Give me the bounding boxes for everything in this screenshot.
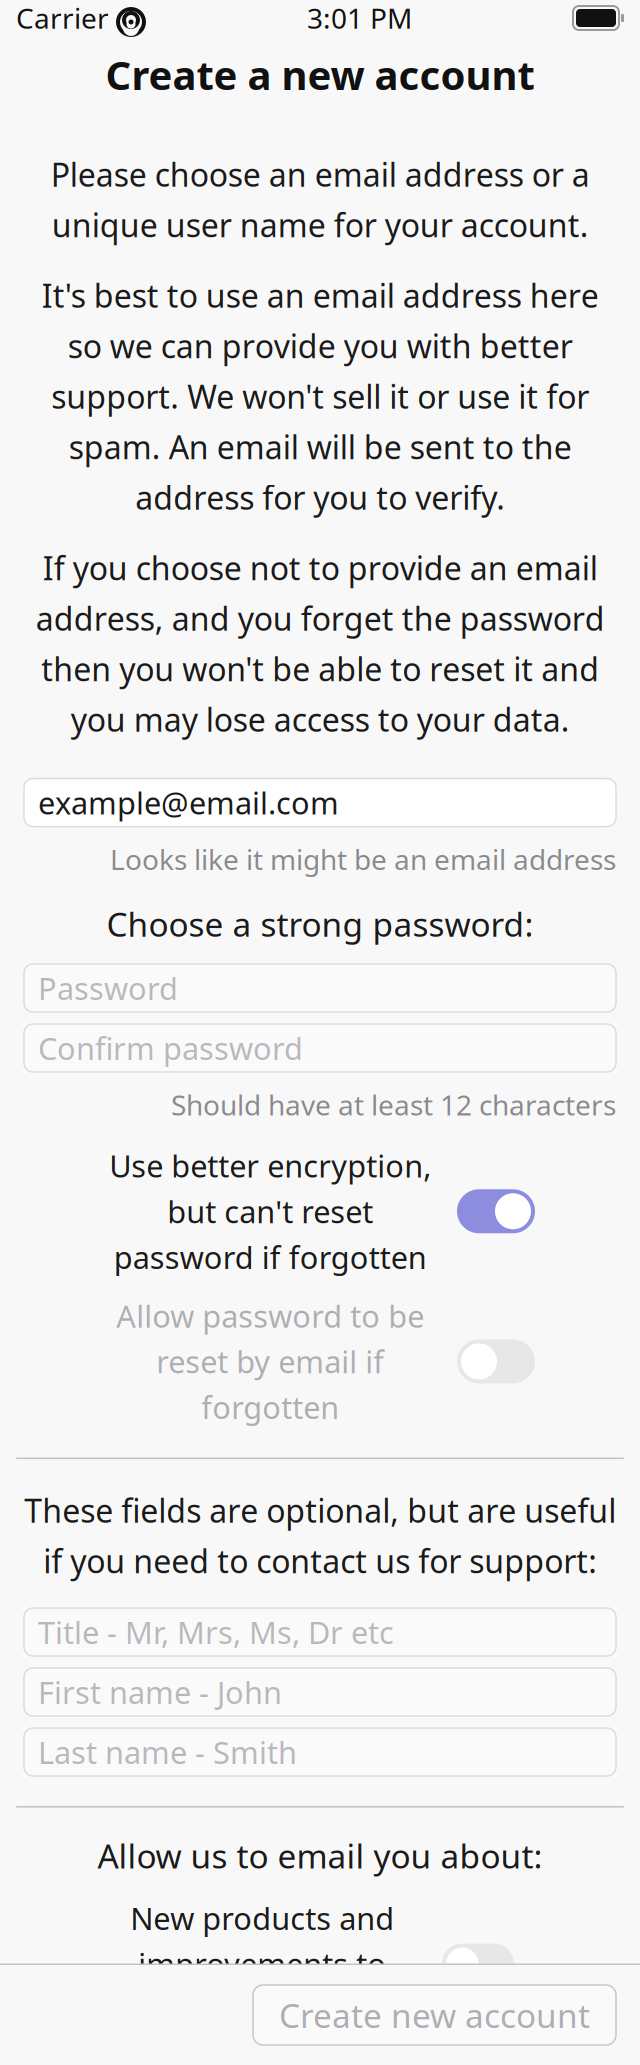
staticText: Create a new account	[105, 48, 534, 101]
staticText: 3:01 PM	[307, 0, 412, 37]
staticText: Please choose an email address or a uniq…	[50, 153, 589, 246]
button[interactable]: Use better encryption, but can't reset p…	[0, 1145, 640, 1277]
staticText: Choose a strong password:	[106, 902, 533, 946]
staticText: Allow password to be reset by email if f…	[116, 1295, 424, 1428]
staticText: example@email.com	[38, 782, 339, 823]
button[interactable]: First name - John	[24, 1668, 616, 1716]
staticText: First name - John	[38, 1672, 282, 1712]
staticText: If you choose not to provide an email ad…	[35, 547, 604, 741]
button[interactable]: Title - Mr, Mrs, Ms, Dr etc	[24, 1608, 616, 1656]
staticText: Should have at least 12 characters	[171, 1086, 616, 1123]
staticText: These fields are optional, but are usefu…	[24, 1489, 616, 1582]
button[interactable]: New products and improvements to existin…	[0, 1898, 616, 2030]
button[interactable]: Allow password to be reset by email if f…	[0, 1295, 640, 1428]
staticText: Last name - Smith	[38, 1732, 297, 1772]
staticText: Allow us to email you about:	[97, 1833, 542, 1878]
staticText: Title - Mr, Mrs, Ms, Dr etc	[38, 1612, 394, 1652]
staticText: New products and improvements to existin…	[130, 1898, 394, 2030]
button[interactable]: Create new account	[253, 1985, 616, 2045]
staticText: Looks like it might be an email address	[110, 841, 616, 878]
button[interactable]: Last name - Smith	[24, 1728, 616, 1776]
staticText: Carrier	[16, 0, 109, 37]
button[interactable]: example@email.com	[24, 779, 616, 827]
button[interactable]: Confirm password	[24, 1024, 616, 1072]
staticText: Password	[38, 968, 178, 1008]
button[interactable]: Password	[24, 964, 616, 1012]
staticText: It's best to use an email address here s…	[41, 274, 598, 519]
staticText: Use better encryption, but can't reset p…	[109, 1145, 431, 1277]
staticText: Confirm password	[38, 1028, 303, 1068]
staticText: Create new account	[279, 1993, 590, 2037]
